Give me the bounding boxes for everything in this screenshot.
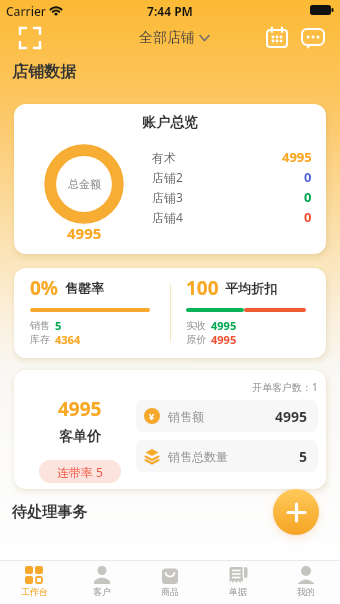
staticText: 7:44 PM <box>0 3 340 19</box>
button[interactable]: 单据 <box>204 560 272 604</box>
staticText: 0 <box>304 188 312 206</box>
staticText: 账户总览 <box>142 114 198 132</box>
staticText: 原价 <box>186 333 206 346</box>
staticText: 连带率 5 <box>57 464 103 480</box>
staticText: 店铺数据 <box>12 62 76 82</box>
staticText: 库存 <box>30 333 50 346</box>
button[interactable]: 店铺2 <box>152 167 312 187</box>
staticText: Carrier <box>6 3 46 19</box>
staticText: 有术 <box>152 150 176 165</box>
staticText: 开单客户数：1 <box>252 380 318 394</box>
staticText: 4995 <box>211 332 237 347</box>
staticText: 0 <box>304 208 312 226</box>
staticText: 平均折扣 <box>225 280 277 296</box>
staticText: 5 <box>55 318 62 333</box>
button[interactable]: 店铺4 <box>152 207 312 227</box>
staticText: ¥ <box>149 410 155 422</box>
button[interactable]: ¥ <box>136 400 318 432</box>
staticText: 我的 <box>297 586 315 597</box>
staticText: 4995 <box>275 407 308 426</box>
staticText: 店铺2 <box>152 169 183 185</box>
staticText: 4995 <box>211 318 237 333</box>
staticText: 商品 <box>161 586 179 597</box>
button[interactable]: 我的 <box>272 560 340 604</box>
staticText: 店铺3 <box>152 189 183 205</box>
staticText: 店铺4 <box>152 209 183 225</box>
button[interactable]: 店铺3 <box>152 187 312 207</box>
button[interactable]: 连带率 5 <box>39 460 121 483</box>
staticText: 售罄率 <box>65 280 104 296</box>
staticText: 工作台 <box>21 586 48 597</box>
staticText: 4364 <box>55 332 81 347</box>
button[interactable]: 有术 <box>152 147 312 167</box>
button[interactable] <box>301 27 326 52</box>
staticText: 4995 <box>67 223 102 243</box>
staticText: 全部店铺 <box>139 29 195 47</box>
staticText: 0 <box>304 168 312 186</box>
staticText: 客户 <box>93 586 111 597</box>
button[interactable]: 客户 <box>68 560 136 604</box>
staticText: 实收 <box>186 319 206 332</box>
button[interactable] <box>266 26 290 50</box>
button[interactable]: 工作台 <box>0 560 68 604</box>
staticText: 4995 <box>58 396 102 418</box>
button[interactable] <box>273 489 319 535</box>
button[interactable]: 商品 <box>136 560 204 604</box>
staticText: 100 <box>186 275 219 301</box>
staticText: 销售 <box>30 319 50 332</box>
button[interactable] <box>18 26 42 50</box>
staticText: 待处理事务 <box>12 503 87 522</box>
staticText: 总金额 <box>68 177 101 191</box>
staticText: 0% <box>30 275 59 301</box>
staticText: 单据 <box>229 586 247 597</box>
staticText: 4995 <box>282 148 312 166</box>
staticText: 销售总数量 <box>168 449 228 464</box>
button[interactable]: 销售总数量 <box>136 440 318 472</box>
staticText: 销售额 <box>168 409 204 424</box>
button[interactable]: 0% <box>30 268 170 358</box>
button[interactable]: 100 <box>186 268 326 358</box>
button[interactable]: 全部店铺 <box>139 29 209 47</box>
staticText: 客单价 <box>59 428 101 446</box>
staticText: 5 <box>299 447 308 466</box>
